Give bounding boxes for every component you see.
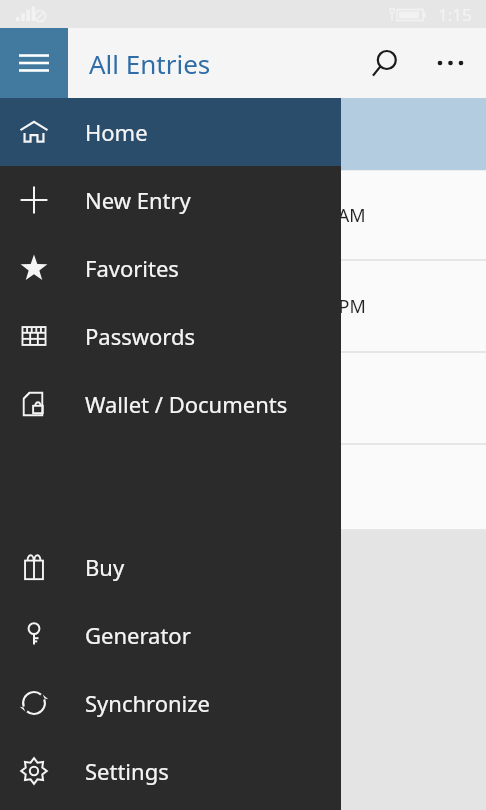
- button[interactable]: [0, 445, 486, 529]
- button[interactable]: Generator: [0, 601, 341, 669]
- button[interactable]: Open navigation menu: [0, 28, 68, 98]
- staticText: 6/11/2017 4:07 PM: [208, 294, 366, 319]
- staticText: Generator: [85, 620, 191, 650]
- staticText: Favorites: [85, 253, 179, 283]
- button[interactable]: [0, 353, 486, 443]
- button[interactable]: New Entry: [0, 166, 341, 234]
- staticText: New Entry: [85, 185, 191, 215]
- staticText: 1:15: [438, 3, 472, 26]
- staticText: Home: [85, 117, 148, 147]
- button[interactable]: Passwords: [0, 302, 341, 370]
- button[interactable]: Favorites: [0, 234, 341, 302]
- button[interactable]: Home: [0, 98, 341, 166]
- button[interactable]: 6/12/2017 10:23 AM: [0, 171, 486, 259]
- button[interactable]: Search: [354, 28, 416, 98]
- button[interactable]: More options: [416, 28, 486, 98]
- button[interactable]: Wallet / Documents: [0, 370, 341, 438]
- staticText: Settings: [85, 756, 169, 786]
- staticText: 6/12/2017 10:23 AM: [197, 203, 366, 228]
- staticText: Buy: [85, 552, 125, 582]
- button[interactable]: 6/11/2017 4:07 PM: [0, 261, 486, 351]
- button[interactable]: Synchronize: [0, 669, 341, 737]
- button[interactable]: Settings: [0, 737, 341, 805]
- staticText: Wallet / Documents: [85, 389, 288, 419]
- staticText: All Entries: [89, 46, 211, 81]
- staticText: Passwords: [85, 321, 196, 351]
- button[interactable]: Buy: [0, 533, 341, 601]
- staticText: Synchronize: [85, 688, 211, 718]
